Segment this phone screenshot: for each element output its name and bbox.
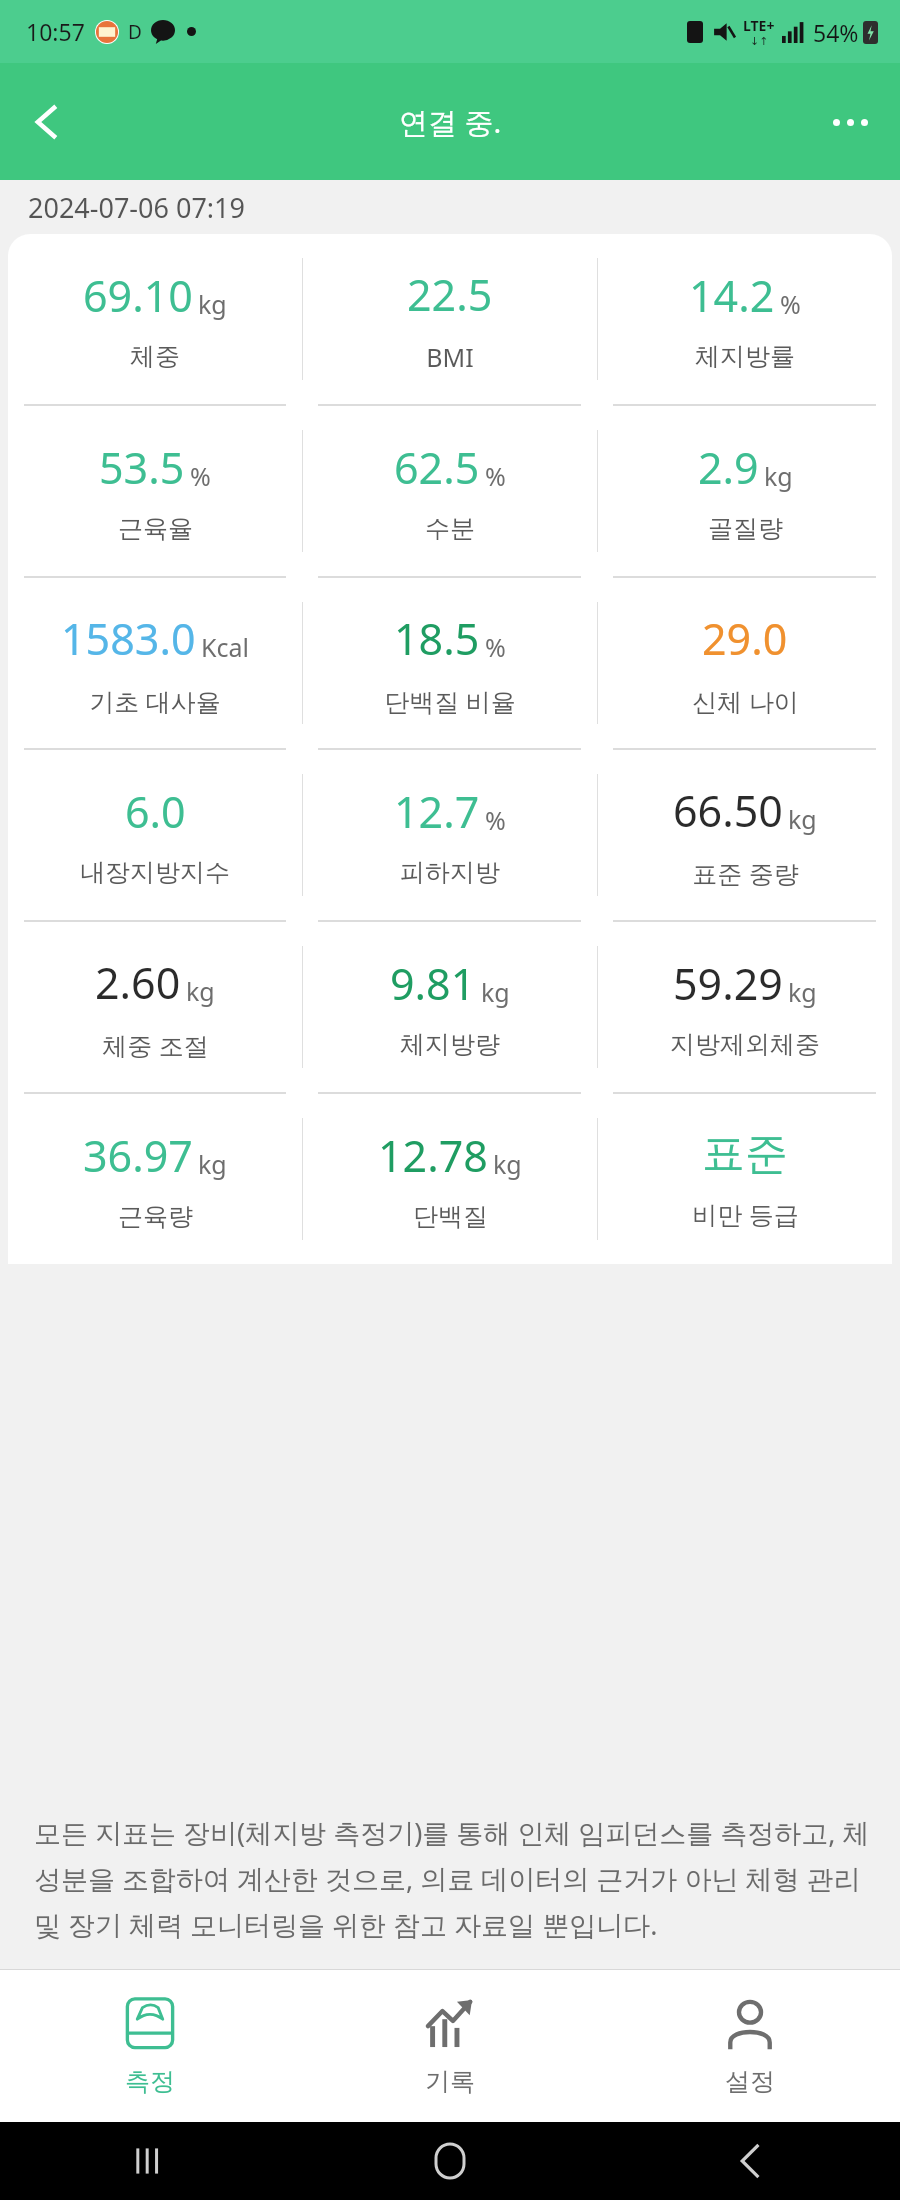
staticText: 2024-07-06 07:19 — [28, 189, 245, 226]
staticText: 표준 — [702, 1127, 788, 1181]
staticText: 18.5 — [394, 609, 480, 668]
button[interactable]: 69.10 — [8, 234, 302, 404]
button[interactable]: 22.5 — [303, 234, 597, 404]
button[interactable]: 9.81 — [303, 922, 597, 1092]
staticText: 체지방률 — [695, 341, 795, 372]
staticText: 10:57 — [26, 16, 85, 47]
button[interactable]: 12.78 — [303, 1094, 597, 1264]
staticText: kg — [493, 1147, 522, 1181]
staticText: 피하지방 — [400, 857, 500, 888]
staticText: 62.5 — [394, 438, 480, 497]
staticText: % — [485, 803, 506, 837]
staticText: kg — [481, 975, 510, 1009]
staticText: 근육량 — [118, 1201, 193, 1232]
staticText: 단백질 비율 — [384, 684, 516, 718]
staticText: 설정 — [725, 2066, 775, 2097]
button[interactable]: 66.50 — [598, 750, 892, 920]
staticText: 신체 나이 — [692, 684, 799, 718]
staticText: % — [780, 287, 801, 321]
staticText: kg — [198, 1147, 227, 1181]
staticText: 22.5 — [407, 265, 493, 324]
button[interactable]: 53.5 — [8, 406, 302, 576]
staticText: 체중 — [130, 341, 180, 372]
staticText: kg — [788, 802, 817, 836]
staticText: 29.0 — [702, 609, 788, 668]
staticText: kg — [198, 287, 227, 321]
button[interactable]: 2.9 — [598, 406, 892, 576]
button[interactable]: 59.29 — [598, 922, 892, 1092]
staticText: 54% — [813, 17, 859, 48]
staticText: 연결 중. — [399, 102, 502, 142]
staticText: 모든 지표는 장비(체지방 측정기)를 통해 인체 임피던스를 측정하고, 체성… — [34, 1814, 870, 1943]
button[interactable]: Back — [600, 2122, 900, 2200]
button[interactable]: 14.2 — [598, 234, 892, 404]
button[interactable]: 62.5 — [303, 406, 597, 576]
button[interactable]: 표준 — [598, 1094, 892, 1264]
staticText: 지방제외체중 — [670, 1029, 820, 1060]
staticText: 12.7 — [394, 782, 480, 841]
staticText: 12.78 — [378, 1126, 488, 1185]
staticText: % — [190, 459, 211, 493]
staticText: 14.2 — [689, 266, 775, 325]
staticText: 53.5 — [99, 438, 185, 497]
staticText: Kcal — [201, 630, 249, 664]
staticText: 측정 — [125, 2066, 175, 2097]
button[interactable]: Back — [12, 86, 84, 158]
staticText: 골질량 — [708, 513, 783, 544]
button[interactable]: Recent apps — [0, 2122, 300, 2200]
staticText: % — [485, 459, 506, 493]
staticText: 체지방량 — [400, 1029, 500, 1060]
staticText: 36.97 — [83, 1126, 193, 1185]
staticText: 기초 대사율 — [89, 684, 221, 718]
staticText: kg — [186, 974, 215, 1008]
button[interactable]: 36.97 — [8, 1094, 302, 1264]
button[interactable]: Home — [300, 2122, 600, 2200]
button[interactable]: 29.0 — [598, 578, 892, 748]
staticText: 수분 — [425, 513, 475, 544]
staticText: 66.50 — [673, 781, 783, 840]
staticText: 표준 중량 — [692, 856, 799, 890]
staticText: kg — [788, 975, 817, 1009]
staticText: 6.0 — [125, 782, 186, 841]
staticText: 2.9 — [698, 438, 759, 497]
staticText: 근육율 — [118, 513, 193, 544]
button[interactable]: 측정 — [0, 1970, 300, 2122]
button[interactable]: 18.5 — [303, 578, 597, 748]
staticText: 단백질 — [413, 1201, 488, 1232]
staticText: 기록 — [425, 2066, 475, 2097]
button[interactable]: 12.7 — [303, 750, 597, 920]
staticText: kg — [764, 459, 793, 493]
staticText: D — [128, 19, 142, 45]
staticText: 59.29 — [673, 954, 783, 1013]
staticText: 1583.0 — [61, 609, 196, 668]
staticText: % — [485, 630, 506, 664]
button[interactable]: 기록 — [300, 1970, 600, 2122]
staticText: 9.81 — [390, 954, 476, 1013]
staticText: 내장지방지수 — [80, 857, 230, 888]
staticText: 체중 조절 — [102, 1028, 209, 1062]
button[interactable]: 6.0 — [8, 750, 302, 920]
staticText: LTE+ — [743, 16, 775, 35]
staticText: ↓↑ — [750, 35, 769, 48]
staticText: 69.10 — [83, 266, 193, 325]
button[interactable]: More options — [814, 86, 886, 158]
staticText: 2.60 — [95, 953, 181, 1012]
staticText: BMI — [426, 340, 474, 374]
button[interactable]: 2.60 — [8, 922, 302, 1092]
staticText: 비만 등급 — [692, 1197, 799, 1231]
button[interactable]: 설정 — [600, 1970, 900, 2122]
button[interactable]: 1583.0 — [8, 578, 302, 748]
